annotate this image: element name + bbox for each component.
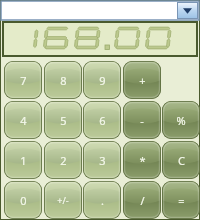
staticText: 7 <box>20 73 27 88</box>
button[interactable]: +/- <box>44 181 82 219</box>
staticText: % <box>176 113 186 128</box>
staticText: / <box>140 193 145 208</box>
button[interactable]: 1 <box>4 141 42 179</box>
staticText: = <box>178 193 185 208</box>
button[interactable]: . <box>83 181 121 219</box>
staticText: 1 <box>20 153 27 168</box>
staticText: 8 <box>60 73 67 88</box>
button[interactable]: + <box>123 61 161 99</box>
button[interactable]: 9 <box>83 61 121 99</box>
button[interactable]: - <box>123 101 161 139</box>
button[interactable]: 8 <box>44 61 82 99</box>
staticText: C <box>178 153 185 168</box>
button[interactable]: 4 <box>4 101 42 139</box>
button[interactable]: 2 <box>44 141 82 179</box>
staticText: * <box>139 153 146 168</box>
button[interactable]: * <box>123 141 161 179</box>
button[interactable]: 5 <box>44 101 82 139</box>
staticText: 2 <box>60 153 67 168</box>
staticText: 9 <box>99 73 106 88</box>
staticText: 6 <box>99 113 106 128</box>
staticText: 4 <box>20 113 27 128</box>
button[interactable]: / <box>123 181 161 219</box>
staticText: +/- <box>57 194 69 206</box>
staticText: 3 <box>99 153 106 168</box>
button[interactable]: 0 <box>4 181 42 219</box>
button[interactable]: 3 <box>83 141 121 179</box>
staticText: 5 <box>60 113 67 128</box>
button[interactable]: = <box>162 181 200 219</box>
staticText: 0 <box>20 193 27 208</box>
button[interactable]: C <box>162 141 200 179</box>
button[interactable]: 6 <box>83 101 121 139</box>
staticText: + <box>139 73 146 88</box>
button[interactable]: % <box>162 101 200 139</box>
staticText: . <box>101 193 104 208</box>
button[interactable]: 7 <box>4 61 42 99</box>
staticText: - <box>140 113 144 128</box>
